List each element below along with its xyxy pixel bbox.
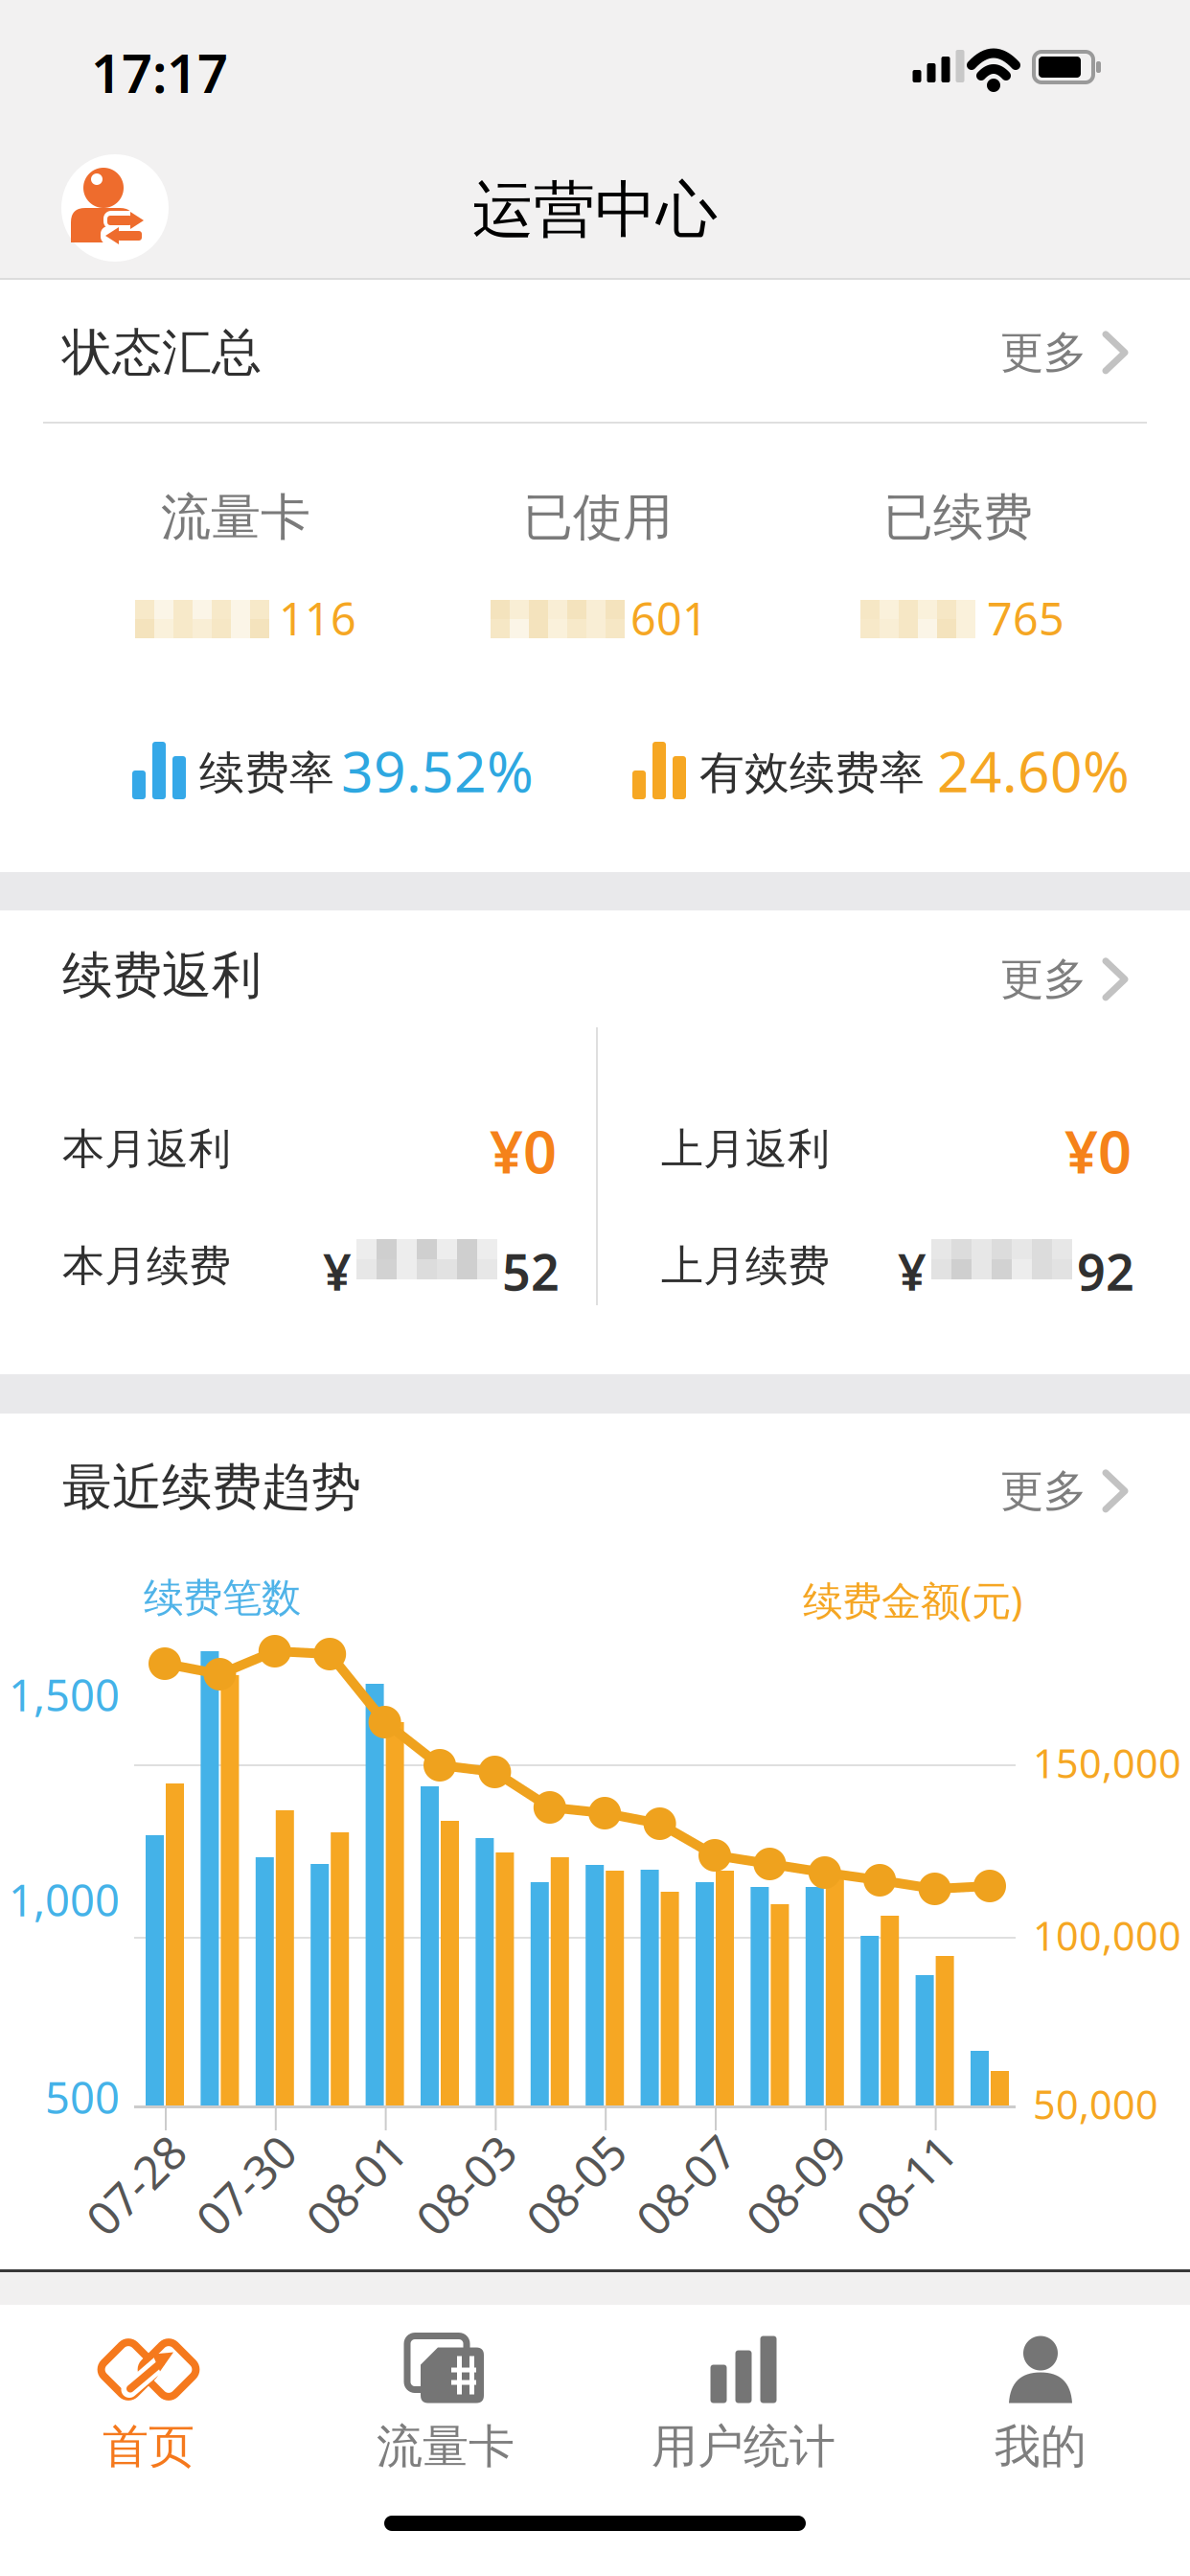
- staticText: 08-05: [517, 2154, 634, 2215]
- staticText: 17:17: [91, 36, 228, 108]
- staticText: 150,000: [1033, 1736, 1181, 1789]
- staticText: 08-03: [407, 2154, 524, 2215]
- staticText: 流量卡: [377, 2418, 515, 2475]
- button[interactable]: 更多: [1000, 1464, 1129, 1518]
- staticText: 首页: [103, 2418, 195, 2475]
- staticText: 我的: [995, 2418, 1087, 2475]
- staticText: 用户统计: [652, 2418, 835, 2475]
- button[interactable]: 流量卡: [297, 2331, 594, 2480]
- staticText: ¥0: [1064, 1112, 1132, 1190]
- staticText: 本月返利: [62, 1123, 231, 1175]
- button[interactable]: 我的: [892, 2331, 1189, 2480]
- staticText: 更多: [1000, 1464, 1087, 1518]
- staticText: 上月续费: [661, 1240, 830, 1292]
- staticText: 状态汇总: [62, 322, 262, 383]
- staticText: 本月续费: [62, 1240, 231, 1292]
- staticText: 50,000: [1033, 2078, 1158, 2130]
- staticText: 上月返利: [661, 1123, 830, 1175]
- button[interactable]: 首页: [0, 2331, 297, 2480]
- staticText: 08-11: [847, 2154, 964, 2215]
- staticText: 已使用: [523, 487, 673, 548]
- staticText: 07-28: [77, 2154, 195, 2215]
- staticText: 续费率: [199, 746, 334, 800]
- staticText: 续费金额(元): [803, 1574, 1022, 1626]
- staticText: 运营中心: [472, 172, 718, 248]
- staticText: 765: [987, 588, 1064, 648]
- staticText: 更多: [1000, 326, 1087, 379]
- staticText: 1,500: [9, 1666, 120, 1723]
- staticText: 08-01: [297, 2154, 414, 2215]
- staticText: 有效续费率: [699, 746, 925, 800]
- staticText: ¥: [323, 1238, 352, 1304]
- staticText: 续费笔数: [144, 1574, 301, 1622]
- button[interactable]: 用户统计: [595, 2331, 892, 2480]
- staticText: 08-09: [737, 2154, 854, 2215]
- staticText: 续费返利: [62, 945, 262, 1006]
- staticText: 100,000: [1033, 1909, 1181, 1962]
- staticText: 已续费: [883, 487, 1033, 548]
- staticText: 116: [279, 588, 356, 648]
- button[interactable]: 更多: [1000, 326, 1129, 379]
- staticText: 92: [1077, 1238, 1134, 1304]
- staticText: 07-30: [187, 2154, 304, 2215]
- staticText: 1,000: [9, 1871, 120, 1928]
- staticText: ¥0: [490, 1112, 557, 1190]
- staticText: 24.60%: [937, 733, 1130, 808]
- staticText: 39.52%: [341, 733, 534, 808]
- button[interactable]: 更多: [1000, 953, 1129, 1006]
- staticText: 流量卡: [161, 487, 310, 548]
- staticText: 最近续费趋势: [62, 1457, 361, 1518]
- staticText: ¥: [898, 1238, 927, 1304]
- staticText: 08-07: [627, 2154, 744, 2215]
- staticText: 601: [630, 588, 708, 648]
- staticText: 52: [502, 1238, 560, 1304]
- button[interactable]: 账户切换: [61, 154, 169, 262]
- staticText: 更多: [1000, 953, 1087, 1006]
- staticText: 500: [45, 2068, 120, 2126]
